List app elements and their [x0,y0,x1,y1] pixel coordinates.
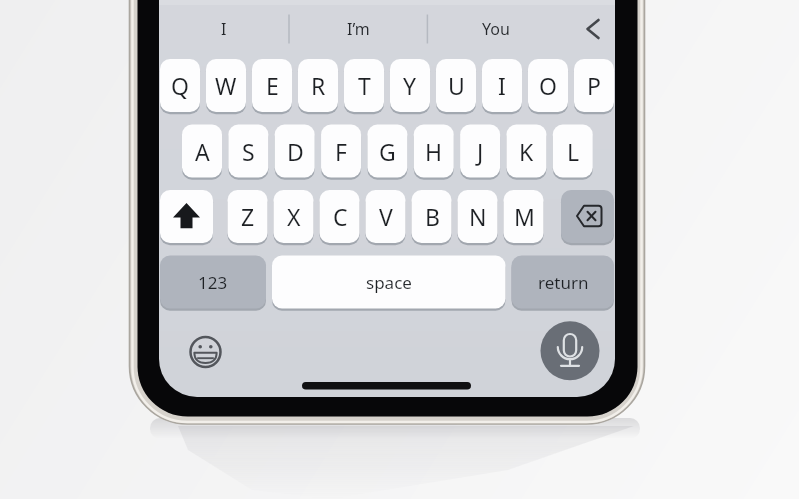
button[interactable] [567,7,615,51]
button[interactable]: K [506,125,546,178]
button[interactable] [160,190,213,243]
button[interactable]: L [553,125,593,178]
button[interactable]: B [412,190,452,243]
staticText: Y [403,70,417,101]
staticText: S [242,136,255,167]
button[interactable]: V [366,190,406,243]
button[interactable]: X [274,190,314,243]
staticText: I [221,18,227,40]
staticText: U [448,70,465,101]
staticText: T [358,70,371,101]
staticText: M [514,201,535,232]
button[interactable]: P [574,59,614,112]
button[interactable]: F [321,125,361,178]
staticText: return [538,271,589,294]
button[interactable]: 123 [160,256,266,309]
button[interactable]: H [414,125,454,178]
button[interactable]: N [458,190,498,243]
staticText: N [469,201,487,232]
staticText: G [379,136,396,167]
button[interactable]: I [482,59,522,112]
staticText: E [266,70,279,101]
button[interactable]: M [504,190,544,243]
staticText: You [482,18,510,40]
button[interactable]: Q [160,59,200,112]
staticText: B [425,201,440,232]
staticText: P [587,70,601,101]
button[interactable]: I [159,7,289,51]
button[interactable]: J [460,125,500,178]
staticText: I [498,70,506,101]
staticText: F [335,136,347,167]
button[interactable]: R [298,59,338,112]
button[interactable]: S [228,125,268,178]
button[interactable]: O [528,59,568,112]
staticText: O [539,70,557,101]
staticText: Z [241,201,255,232]
button[interactable] [561,190,614,243]
staticText: 123 [198,271,228,294]
button[interactable]: You [427,7,565,51]
staticText: J [477,136,484,167]
button[interactable]: space [272,256,506,309]
staticText: space [366,271,412,294]
staticText: L [567,136,580,167]
button[interactable]: Y [390,59,430,112]
button[interactable]: G [367,125,407,178]
button[interactable]: E [252,59,292,112]
staticText: K [519,136,534,167]
button[interactable]: T [344,59,384,112]
staticText: H [425,136,443,167]
staticText: I’m [347,18,370,40]
button[interactable]: A [182,125,222,178]
staticText: D [287,136,304,167]
button[interactable] [540,321,600,381]
button[interactable]: I’m [289,7,427,51]
button[interactable]: C [320,190,360,243]
staticText: W [215,70,237,101]
button[interactable] [188,334,224,370]
staticText: R [311,70,326,101]
button[interactable]: U [436,59,476,112]
staticText: X [287,201,301,232]
button[interactable]: return [512,256,615,309]
staticText: A [195,136,210,167]
button[interactable]: D [275,125,315,178]
button[interactable]: W [206,59,246,112]
button[interactable]: Z [228,190,268,243]
staticText: V [379,201,393,232]
staticText: Q [171,70,189,101]
staticText: C [333,201,348,232]
